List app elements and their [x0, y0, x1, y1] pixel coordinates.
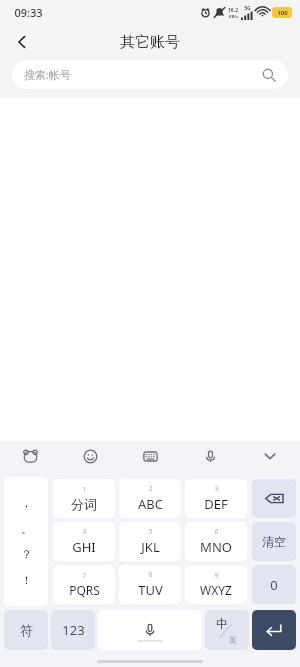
staticText: MNO	[200, 538, 232, 556]
staticText: 09:33	[14, 5, 43, 20]
staticText: 5	[148, 527, 153, 537]
staticText: ，	[21, 496, 32, 510]
button[interactable]: 0	[252, 565, 296, 604]
staticText: 3	[214, 484, 219, 494]
staticText: ！	[21, 573, 32, 587]
staticText: 0	[270, 576, 278, 594]
button[interactable]: 4	[53, 522, 115, 561]
button[interactable]: Enter	[252, 610, 296, 650]
button[interactable]: Voice input	[180, 441, 240, 471]
staticText: 符	[20, 622, 33, 638]
staticText: ABC	[138, 495, 163, 513]
button[interactable]: 2	[119, 479, 181, 518]
staticText: 8	[148, 570, 153, 580]
staticText: 100	[277, 9, 288, 17]
button[interactable]: Hide keyboard	[240, 441, 300, 471]
staticText: 分词	[71, 496, 97, 512]
staticText: 5G	[244, 5, 251, 12]
staticText: JKL	[141, 538, 160, 556]
button[interactable]: Punctuation	[4, 477, 48, 606]
staticText: 6	[214, 527, 219, 537]
staticText: 英	[229, 635, 237, 645]
staticText: DEF	[204, 495, 228, 513]
staticText: 其它账号	[120, 33, 180, 52]
staticText: 清空	[262, 534, 286, 549]
button[interactable]: Chinese English toggle	[205, 610, 249, 650]
staticText: 16.2	[228, 7, 238, 14]
staticText: 1	[82, 485, 87, 495]
staticText: ？	[21, 547, 32, 561]
button[interactable]: Backspace	[252, 479, 296, 518]
button[interactable]: 5	[119, 522, 181, 561]
staticText: 。	[21, 522, 32, 536]
staticText: 9	[214, 571, 219, 581]
staticText: TUV	[138, 581, 163, 599]
staticText: 7	[82, 571, 87, 581]
staticText: 中	[216, 616, 228, 631]
button[interactable]: 搜索:帐号	[12, 60, 288, 89]
staticText: PQRS	[69, 582, 100, 598]
button[interactable]: 7	[53, 565, 115, 604]
button[interactable]: 123	[51, 610, 95, 650]
staticText: 搜索:帐号	[24, 67, 71, 82]
staticText: 4	[82, 527, 87, 537]
button[interactable]: 6	[185, 522, 247, 561]
button[interactable]: Stickers	[0, 441, 60, 471]
button[interactable]: 符	[4, 610, 48, 650]
button[interactable]: 清空	[252, 522, 296, 561]
button[interactable]: 3	[185, 479, 247, 518]
staticText: 123	[62, 621, 85, 639]
staticText: KB/s	[229, 14, 238, 19]
button[interactable]: Emoji	[60, 441, 120, 471]
button[interactable]: 8	[119, 565, 181, 604]
button[interactable]: Back	[6, 26, 38, 58]
button[interactable]: 9	[185, 565, 247, 604]
button[interactable]: Space, voice input	[98, 610, 202, 650]
staticText: 2	[148, 484, 153, 494]
staticText: GHI	[72, 538, 96, 556]
button[interactable]: Keyboard layout	[120, 441, 180, 471]
button[interactable]: 1	[53, 479, 115, 518]
staticText: WXYZ	[200, 582, 232, 598]
